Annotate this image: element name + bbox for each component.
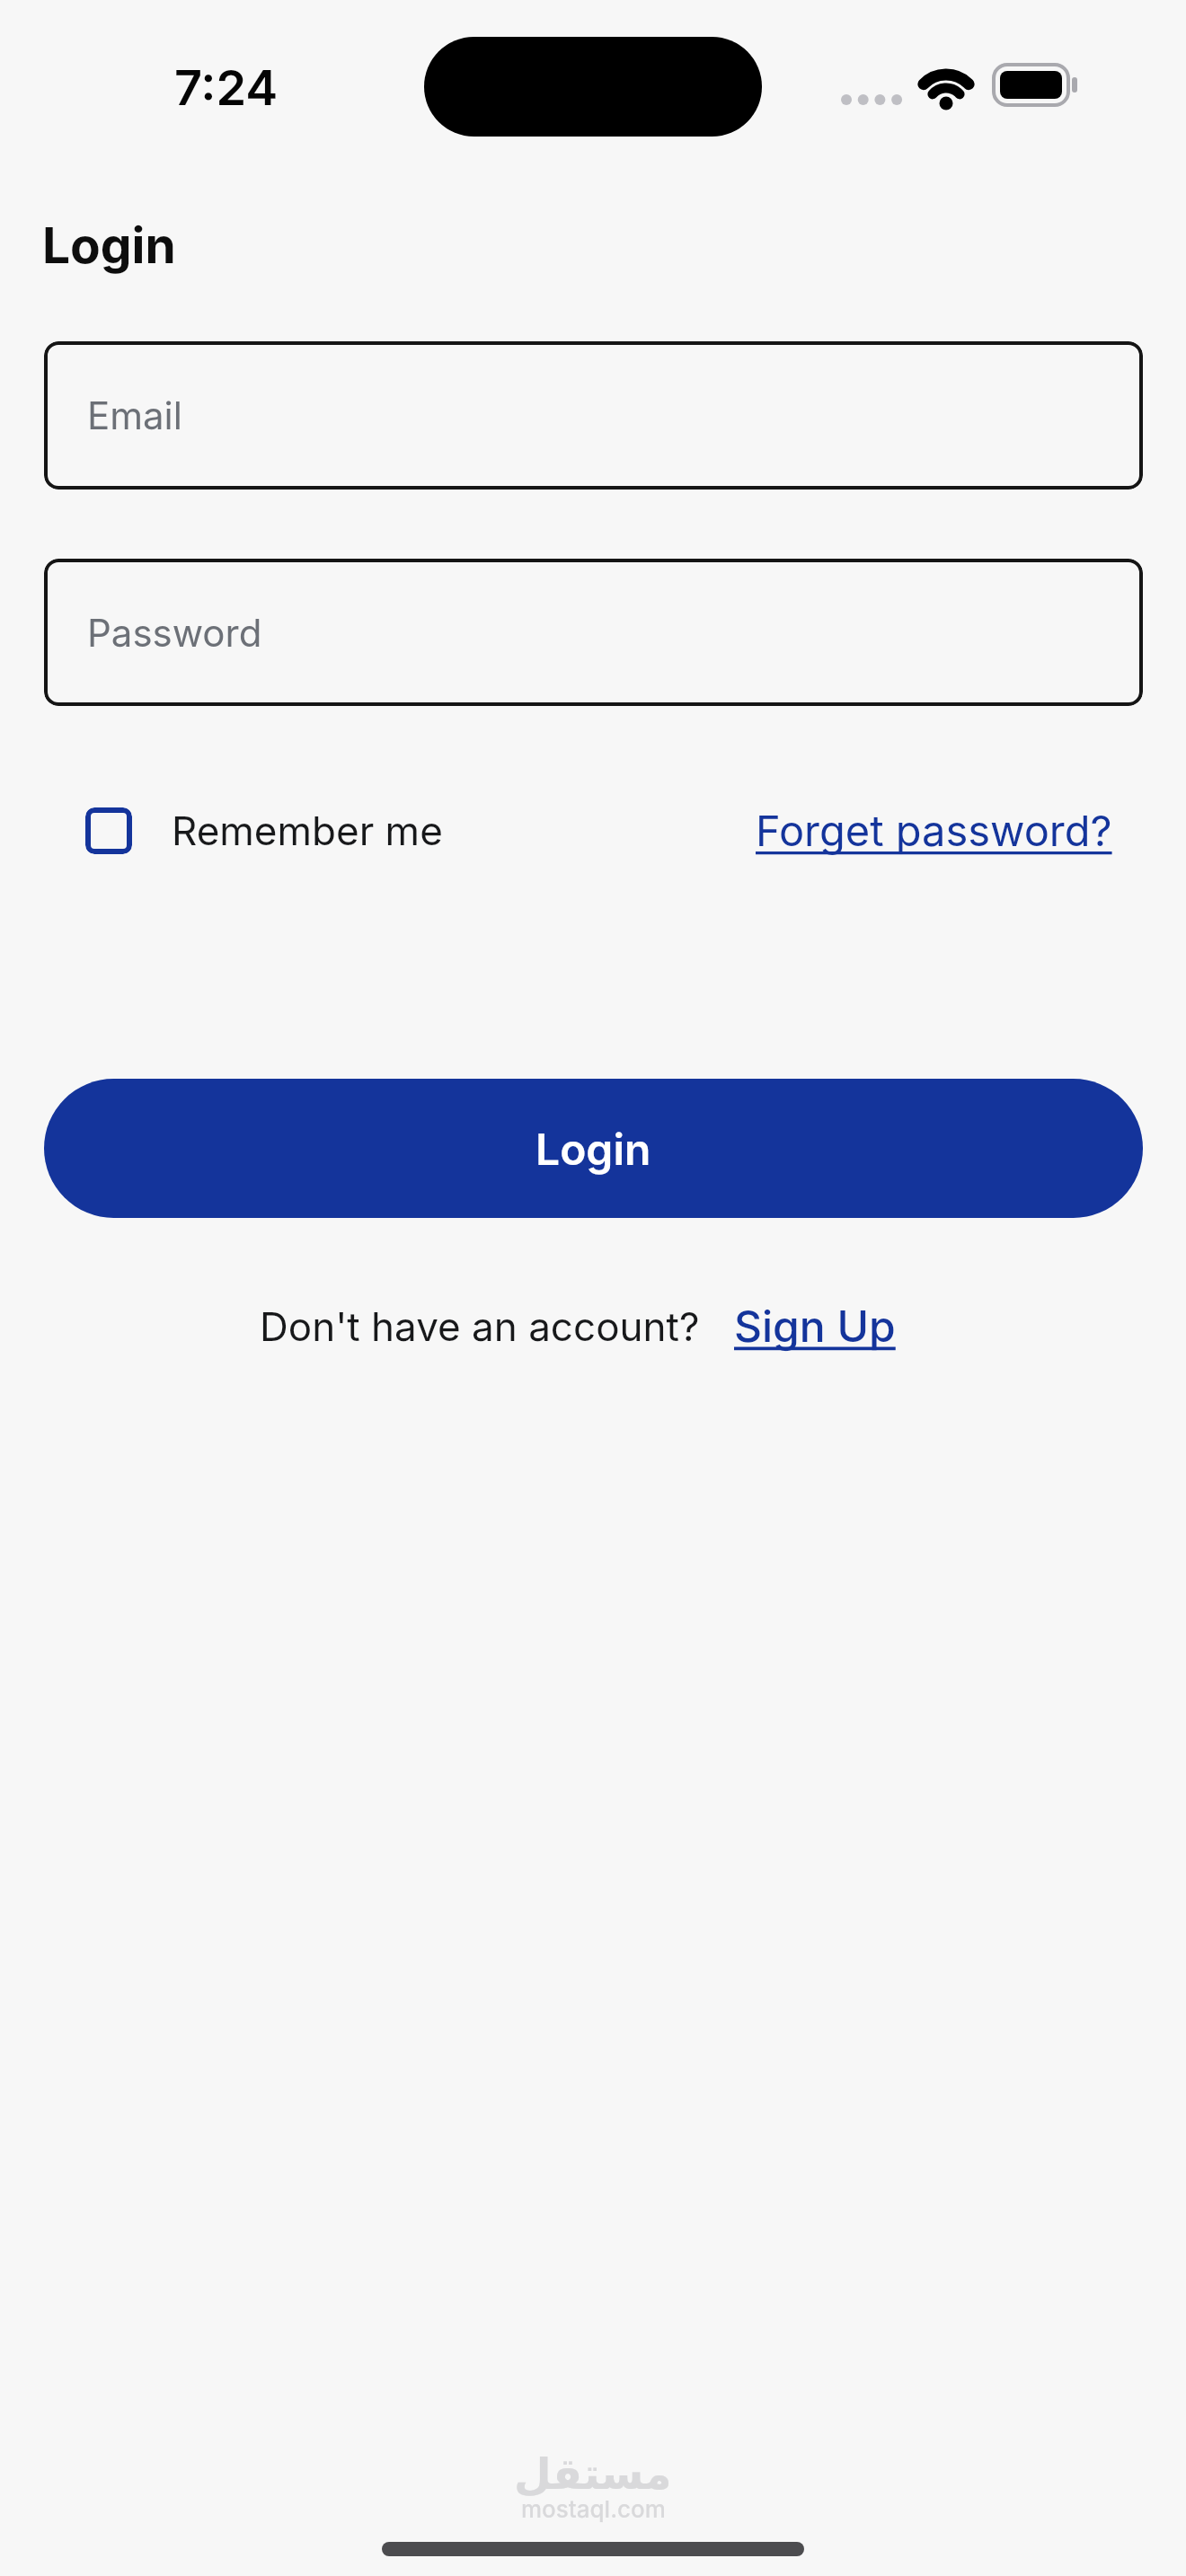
staticText: 7:24 — [174, 58, 279, 117]
staticText: Don't have an account? — [260, 1302, 700, 1350]
staticText: Login — [535, 1123, 651, 1175]
staticText: مستقل — [514, 2448, 672, 2499]
staticText: Login — [42, 216, 176, 276]
staticText: Password — [87, 610, 262, 656]
button[interactable]: Email — [44, 341, 1143, 490]
button[interactable]: Forget password? — [756, 805, 1112, 856]
button[interactable]: Sign Up — [734, 1300, 896, 1352]
button[interactable]: Login — [44, 1079, 1143, 1218]
staticText: Email — [87, 393, 182, 438]
staticText: mostaql.com — [521, 2495, 666, 2523]
staticText: Remember me — [172, 807, 443, 854]
button[interactable]: Remember me — [85, 807, 443, 854]
button[interactable]: Password — [44, 559, 1143, 706]
